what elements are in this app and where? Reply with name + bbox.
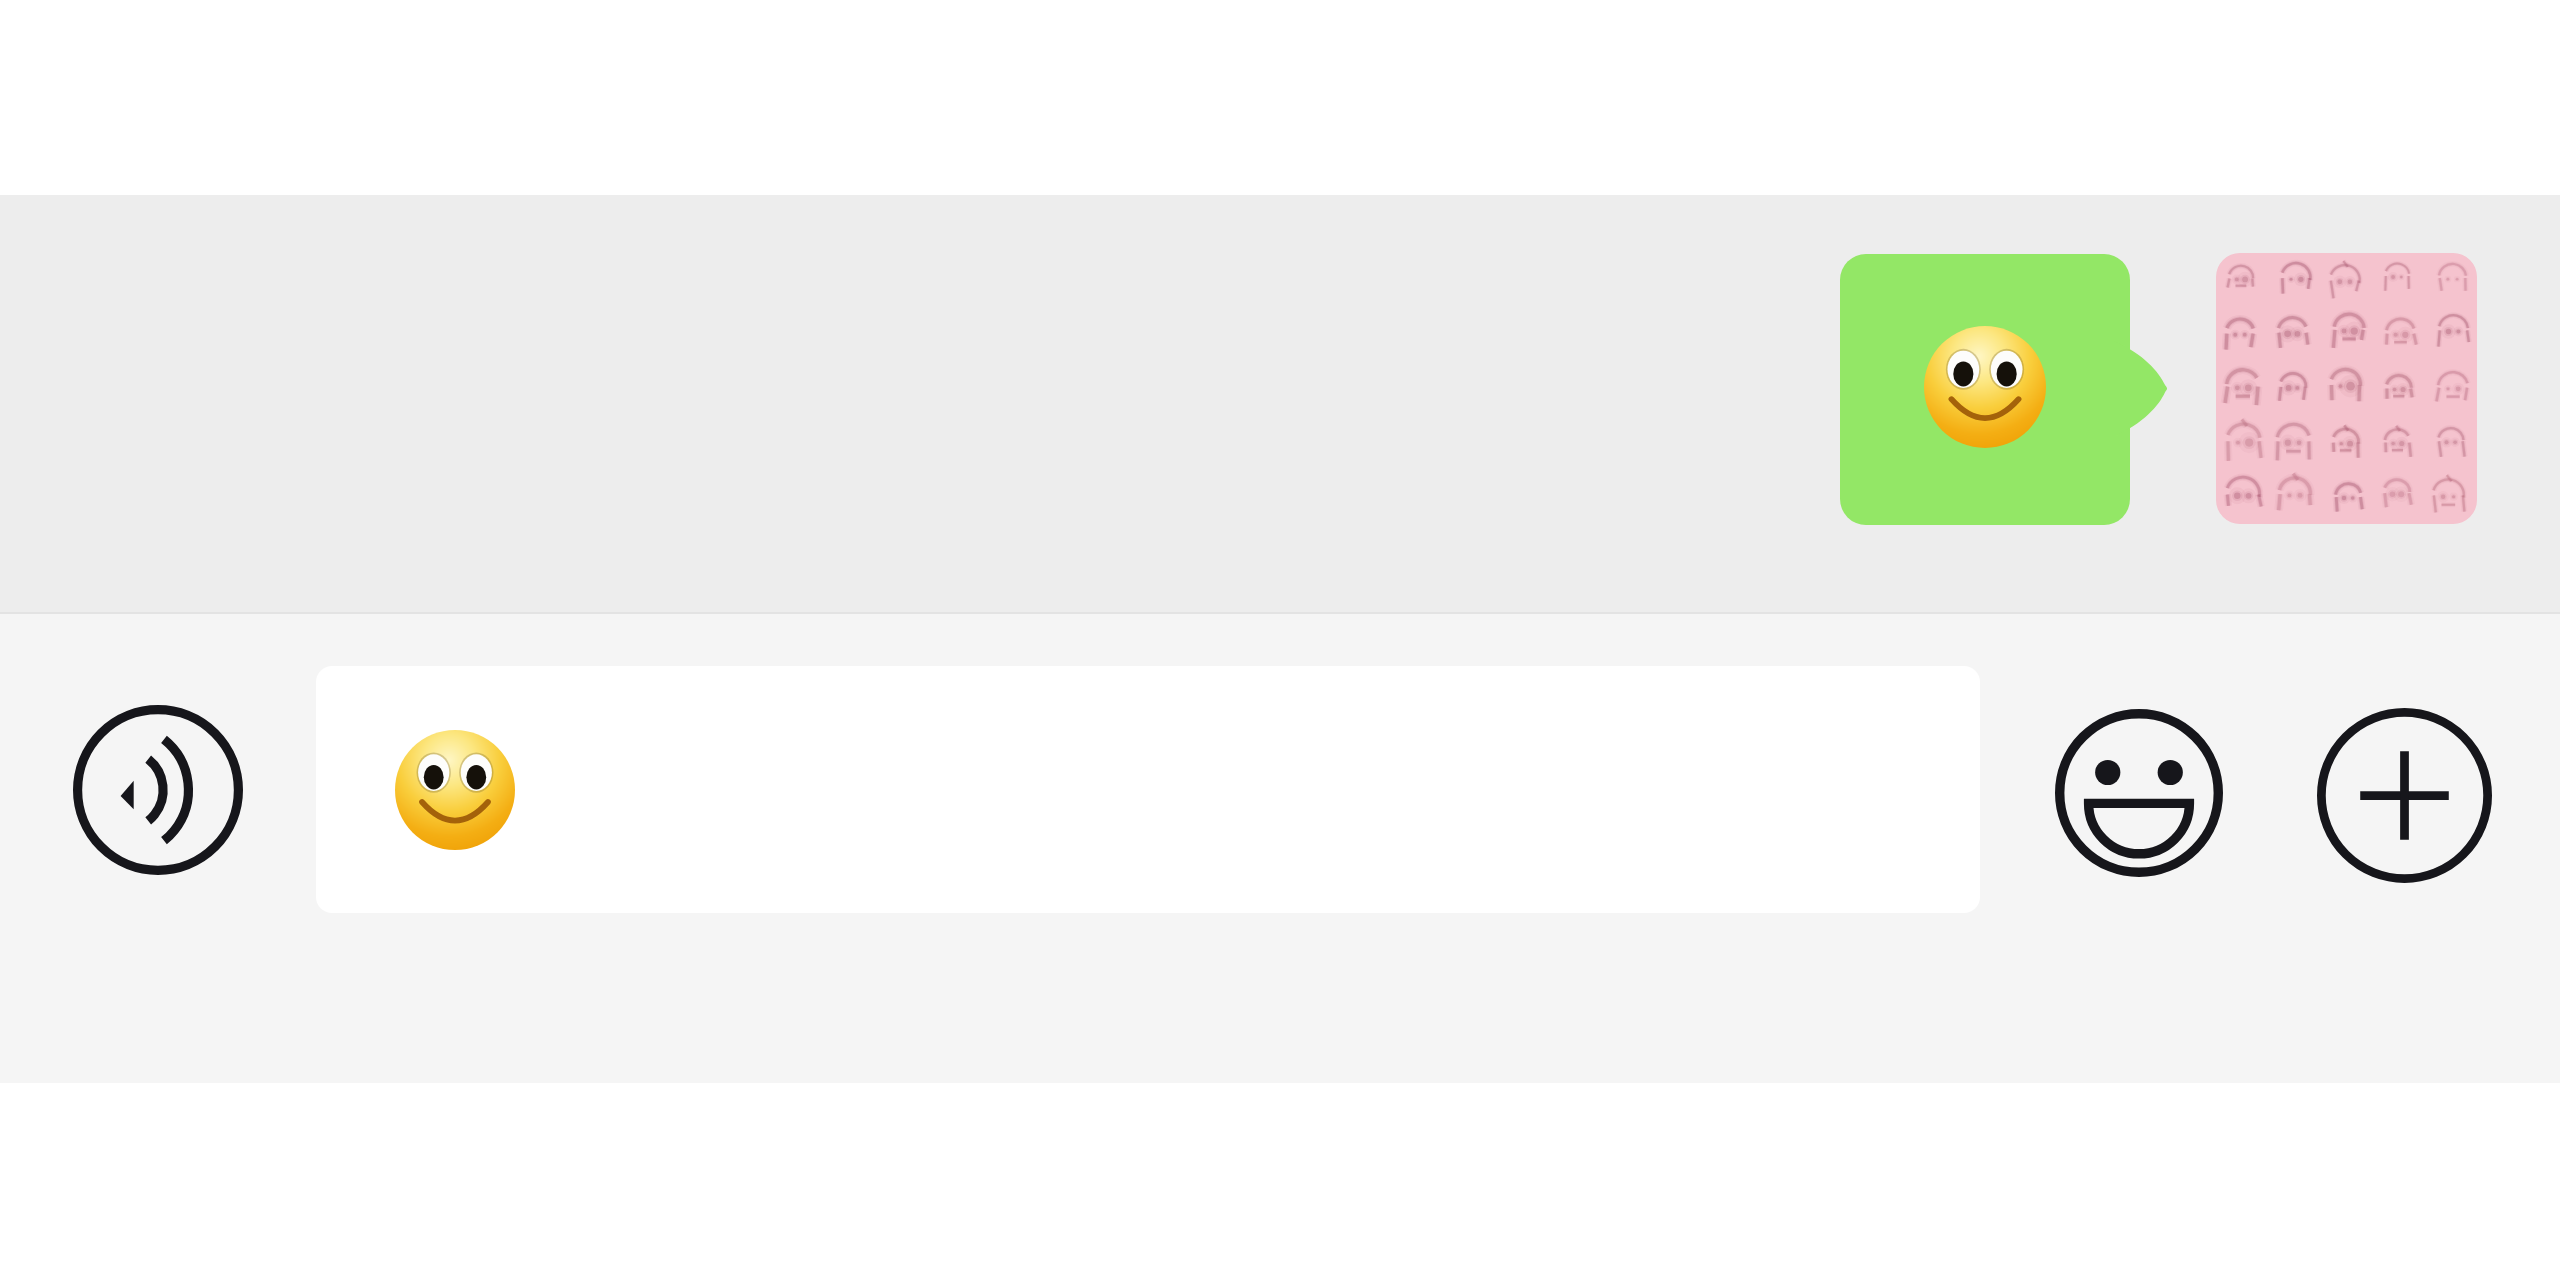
button[interactable]: Contact avatar bbox=[2216, 253, 2477, 524]
button[interactable]: Emoji bbox=[2045, 699, 2233, 887]
button[interactable]: Message input field bbox=[316, 666, 1980, 913]
button[interactable]: Voice message bbox=[64, 696, 252, 884]
button[interactable]: More options bbox=[2310, 701, 2498, 889]
button[interactable]: Sent sticker message bbox=[1840, 254, 2167, 525]
